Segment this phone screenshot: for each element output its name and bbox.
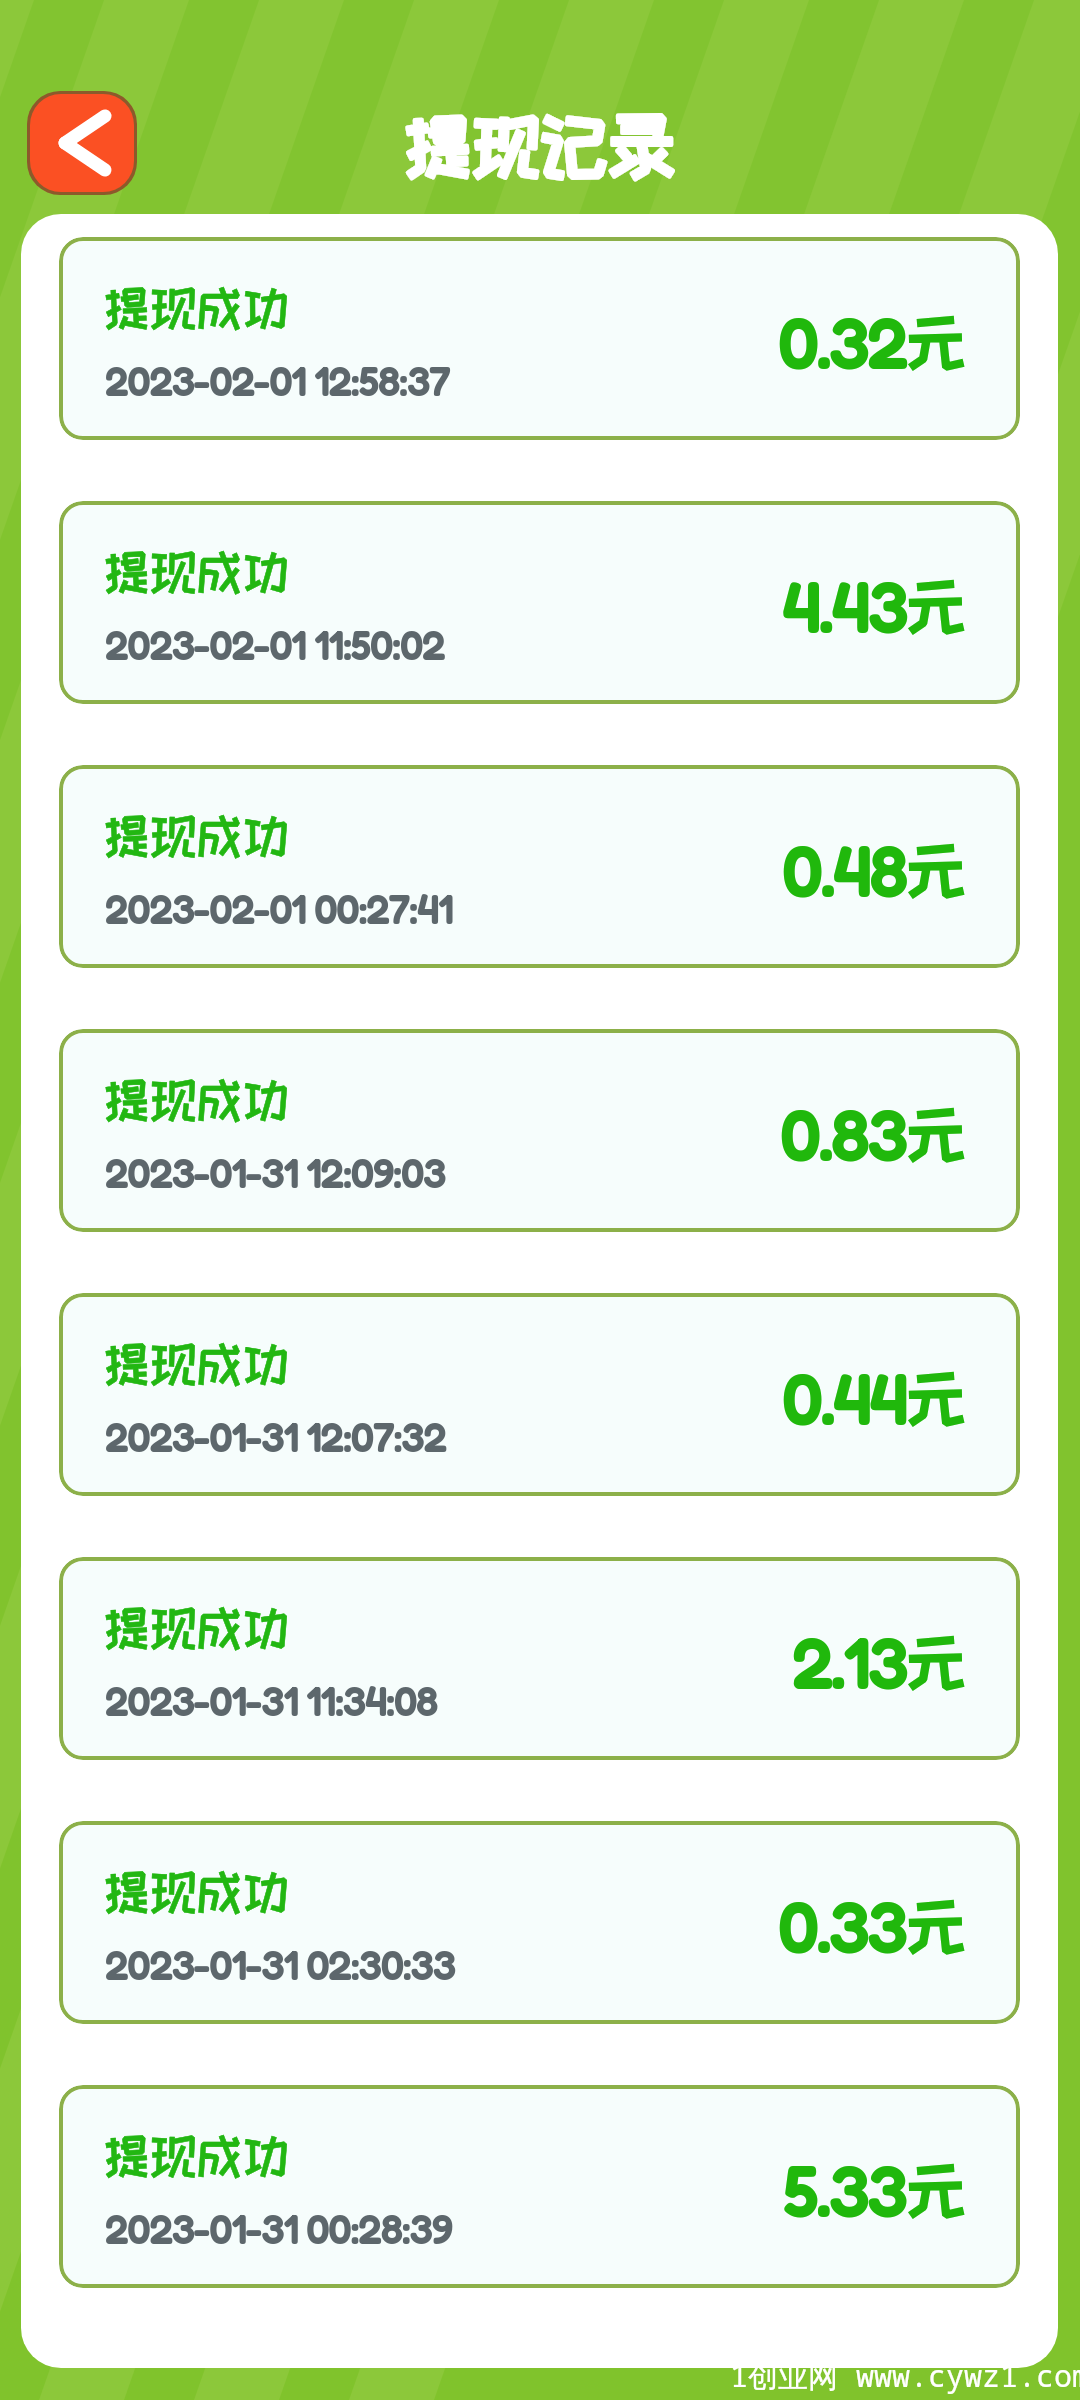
staticText: 提现成功 bbox=[103, 1866, 289, 1917]
staticText: 2023-01-31 02:30:33 bbox=[105, 1940, 455, 1990]
staticText: 提现成功 bbox=[103, 282, 289, 333]
button[interactable]: 提现成功 bbox=[59, 765, 1020, 968]
staticText: 提现成功 bbox=[103, 1338, 289, 1389]
staticText: 元 bbox=[906, 1893, 967, 1959]
staticText: 提现成功 bbox=[103, 2130, 289, 2181]
staticText: 0.83 bbox=[780, 1090, 906, 1177]
staticText: 2023-01-31 12:09:03 bbox=[105, 1148, 446, 1198]
staticText: 4.43 bbox=[782, 562, 906, 649]
staticText: 2023-02-01 11:50:02 bbox=[105, 620, 445, 670]
button[interactable]: Back bbox=[27, 91, 137, 195]
staticText: 提现记录 bbox=[0, 109, 1080, 183]
staticText: 提现成功 bbox=[103, 1866, 289, 1917]
staticText: 2023-02-01 00:27:41 bbox=[105, 884, 453, 934]
staticText: 提现成功 bbox=[103, 546, 289, 597]
staticText: 2023-01-31 11:34:08 bbox=[105, 1676, 438, 1726]
button[interactable]: 提现成功 bbox=[59, 501, 1020, 704]
button[interactable]: 提现成功 bbox=[59, 2085, 1020, 2288]
staticText: 2023-01-31 12:07:32 bbox=[105, 1412, 446, 1462]
staticText: 提现记录 bbox=[0, 109, 1080, 183]
staticText: 0.44 bbox=[782, 1354, 906, 1441]
staticText: 提现成功 bbox=[103, 1602, 289, 1653]
staticText: 提现成功 bbox=[103, 2130, 289, 2181]
button[interactable]: 提现成功 bbox=[59, 237, 1020, 440]
staticText: 5.33 bbox=[783, 2146, 906, 2233]
staticText: 元 bbox=[906, 1629, 967, 1695]
staticText: 0.33 bbox=[778, 1882, 906, 1969]
staticText: 0.32 bbox=[778, 298, 906, 385]
staticText: 提现成功 bbox=[103, 1074, 289, 1125]
button[interactable]: 提现成功 bbox=[59, 1821, 1020, 2024]
button[interactable]: 提现成功 bbox=[59, 1557, 1020, 1760]
staticText: 0.48 bbox=[782, 826, 906, 913]
staticText: 元 bbox=[906, 309, 967, 375]
staticText: 提现成功 bbox=[103, 282, 289, 333]
staticText: 2023-01-31 00:28:39 bbox=[105, 2204, 452, 2254]
staticText: 提现成功 bbox=[103, 546, 289, 597]
staticText: 提现成功 bbox=[103, 1338, 289, 1389]
staticText: 元 bbox=[906, 2157, 967, 2223]
button[interactable]: 提现成功 bbox=[59, 1293, 1020, 1496]
staticText: 元 bbox=[906, 573, 967, 639]
staticText: 元 bbox=[906, 1365, 967, 1431]
staticText: 提现成功 bbox=[103, 810, 289, 861]
staticText: 元 bbox=[906, 837, 967, 903]
staticText: 提现成功 bbox=[103, 1074, 289, 1125]
staticText: 提现成功 bbox=[103, 810, 289, 861]
staticText: 2.13 bbox=[792, 1618, 906, 1705]
button[interactable]: 提现成功 bbox=[59, 1029, 1020, 1232]
staticText: 元 bbox=[906, 1101, 967, 1167]
staticText: 2023-02-01 12:58:37 bbox=[105, 356, 450, 406]
staticText: 提现成功 bbox=[103, 1602, 289, 1653]
staticText: 1创业网 www.cywz1.com bbox=[730, 2355, 1080, 2396]
